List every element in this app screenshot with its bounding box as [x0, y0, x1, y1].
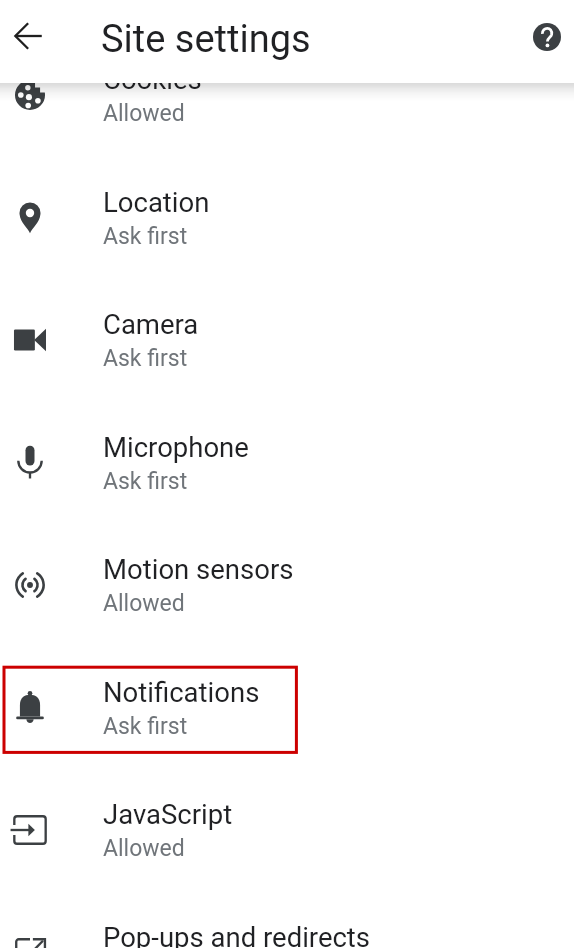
button[interactable]: Camera [0, 278, 574, 401]
staticText: Allowed [103, 100, 185, 127]
staticText: Site settings [101, 17, 311, 62]
staticText: Allowed [103, 590, 185, 617]
button[interactable]: Cookies [0, 83, 574, 156]
staticText: Cookies [103, 83, 202, 95]
button[interactable]: Microphone [0, 401, 574, 524]
button[interactable]: Motion sensors [0, 523, 574, 646]
button[interactable]: Navigate up [0, 8, 56, 64]
staticText: Notifications [103, 676, 260, 708]
button[interactable]: Pop-ups and redirects [0, 891, 574, 948]
staticText: Microphone [103, 431, 249, 463]
button[interactable]: Location [0, 156, 574, 279]
staticText: Ask first [103, 345, 188, 372]
staticText: Camera [103, 308, 199, 340]
staticText: JavaScript [103, 798, 233, 830]
button[interactable]: JavaScript [0, 768, 574, 891]
staticText: Pop-ups and redirects [103, 921, 371, 948]
button[interactable]: Help [519, 9, 574, 65]
button[interactable]: Notifications [0, 646, 574, 769]
staticText: Motion sensors [103, 553, 294, 585]
staticText: Allowed [103, 835, 185, 862]
staticText: Ask first [103, 468, 188, 495]
staticText: Ask first [103, 223, 188, 250]
staticText: Ask first [103, 713, 188, 740]
staticText: Location [103, 186, 210, 218]
